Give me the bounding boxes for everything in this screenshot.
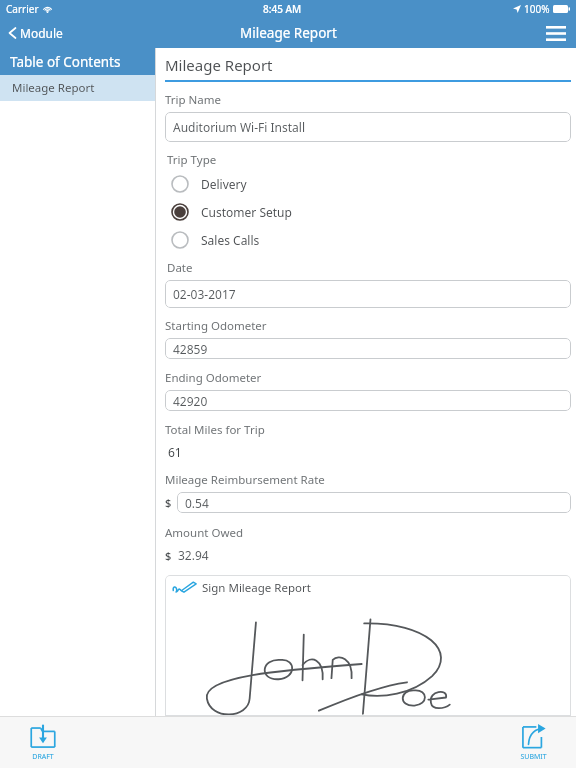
button[interactable]: Sales Calls bbox=[171, 226, 571, 254]
staticText: Customer Setup bbox=[201, 204, 292, 220]
staticText: 100% bbox=[524, 2, 550, 16]
staticText: Date bbox=[167, 260, 193, 276]
staticText: 32.94 bbox=[178, 547, 209, 563]
staticText: Amount Owed bbox=[165, 525, 243, 541]
button[interactable]: SUBMIT bbox=[504, 720, 562, 764]
button[interactable]: Auditorium Wi-Fi Install bbox=[165, 112, 571, 142]
button[interactable]: 0.54 bbox=[177, 492, 571, 513]
staticText: 8:45 AM bbox=[263, 2, 302, 16]
button[interactable]: DRAFT bbox=[14, 720, 72, 764]
staticText: $ bbox=[165, 548, 172, 563]
staticText: SUBMIT bbox=[520, 752, 547, 762]
button[interactable]: Module bbox=[0, 21, 71, 45]
staticText: Mileage Report bbox=[240, 24, 337, 42]
staticText: Carrier bbox=[6, 2, 39, 16]
button[interactable]: 02-03-2017 bbox=[165, 280, 571, 308]
button[interactable]: Table of Contents bbox=[0, 48, 155, 75]
button[interactable]: Sign Mileage Report bbox=[165, 575, 571, 716]
button[interactable]: Mileage Report bbox=[0, 75, 155, 101]
staticText: Mileage Reimbursement Rate bbox=[165, 472, 325, 488]
staticText: Module bbox=[20, 25, 63, 41]
button[interactable]: Customer Setup bbox=[171, 198, 571, 226]
button[interactable]: 42859 bbox=[165, 338, 571, 359]
staticText: Mileage Report bbox=[165, 55, 273, 75]
button[interactable]: Menu bbox=[536, 18, 576, 48]
staticText: 0.54 bbox=[185, 495, 209, 511]
staticText: Sign Mileage Report bbox=[202, 580, 311, 596]
staticText: Mileage Report bbox=[12, 80, 95, 96]
staticText: 61 bbox=[168, 444, 182, 460]
staticText: Trip Name bbox=[165, 92, 222, 108]
staticText: DRAFT bbox=[32, 752, 54, 762]
staticText: 42920 bbox=[173, 393, 208, 409]
staticText: Delivery bbox=[201, 176, 247, 192]
staticText: Total Miles for Trip bbox=[165, 422, 265, 438]
staticText: Ending Odometer bbox=[165, 370, 262, 386]
button[interactable]: 42920 bbox=[165, 390, 571, 411]
staticText: 42859 bbox=[173, 341, 208, 357]
button[interactable]: Delivery bbox=[171, 170, 571, 198]
staticText: Table of Contents bbox=[10, 53, 121, 71]
staticText: Starting Odometer bbox=[165, 318, 267, 334]
staticText: $ bbox=[165, 495, 172, 510]
staticText: 02-03-2017 bbox=[173, 286, 236, 302]
staticText: Trip Type bbox=[167, 152, 217, 168]
staticText: Auditorium Wi-Fi Install bbox=[173, 119, 306, 135]
staticText: Sales Calls bbox=[201, 232, 260, 248]
